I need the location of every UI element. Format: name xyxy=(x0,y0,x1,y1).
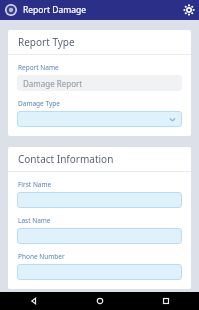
staticText: Contact Information xyxy=(18,152,114,166)
button[interactable]: Damage Report xyxy=(17,75,182,91)
staticText: Damage Report xyxy=(23,78,83,89)
staticText: Report Name xyxy=(18,63,59,72)
staticText: First Name xyxy=(18,180,52,189)
button[interactable]: Settings xyxy=(179,0,199,20)
button[interactable] xyxy=(17,192,182,208)
staticText: Last Name xyxy=(18,216,51,225)
button[interactable]: Recent apps xyxy=(133,292,199,310)
staticText: Report Damage xyxy=(23,4,86,16)
button[interactable]: Back xyxy=(0,292,67,310)
button[interactable] xyxy=(17,228,182,244)
staticText: Damage Type xyxy=(18,99,60,108)
button[interactable] xyxy=(17,264,182,280)
staticText: Phone Number xyxy=(18,252,65,261)
button[interactable]: Home xyxy=(67,292,133,310)
staticText: Report Type xyxy=(18,35,75,49)
button[interactable] xyxy=(17,111,182,127)
